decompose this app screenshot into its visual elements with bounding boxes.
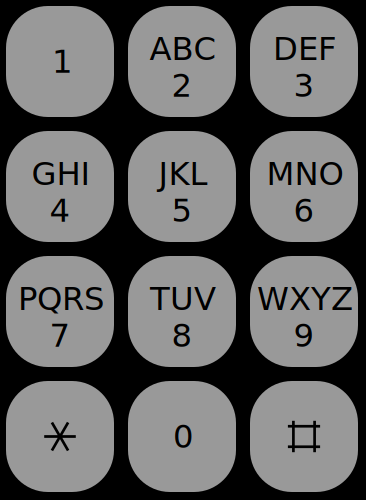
staticText: GHI [31, 155, 90, 193]
staticText: TUV [150, 280, 216, 318]
staticText: 0 [173, 418, 194, 455]
button[interactable]: Star [6, 381, 114, 492]
staticText: ABC [149, 30, 216, 68]
button[interactable]: PQRS [6, 256, 114, 367]
button[interactable]: Pound [250, 381, 358, 492]
button[interactable]: GHI [6, 131, 114, 242]
staticText: 7 [49, 317, 70, 354]
staticText: 3 [293, 67, 314, 104]
button[interactable]: WXYZ [250, 256, 358, 367]
staticText: DEF [273, 30, 337, 68]
button[interactable]: JKL [128, 131, 236, 242]
button[interactable]: ABC [128, 6, 236, 117]
staticText: MNO [266, 155, 343, 193]
staticText: 6 [293, 192, 314, 229]
staticText: PQRS [18, 280, 104, 318]
staticText: 2 [171, 67, 192, 104]
button[interactable]: 1 [6, 6, 114, 117]
staticText: 1 [52, 43, 73, 80]
staticText: 5 [171, 192, 192, 229]
staticText: 8 [171, 317, 192, 354]
staticText: 9 [293, 317, 314, 354]
staticText: JKL [158, 155, 207, 193]
staticText: 4 [49, 192, 70, 229]
button[interactable]: 0 [128, 381, 236, 492]
button[interactable]: DEF [250, 6, 358, 117]
button[interactable]: MNO [250, 131, 358, 242]
staticText: WXYZ [257, 280, 353, 318]
button[interactable]: TUV [128, 256, 236, 367]
